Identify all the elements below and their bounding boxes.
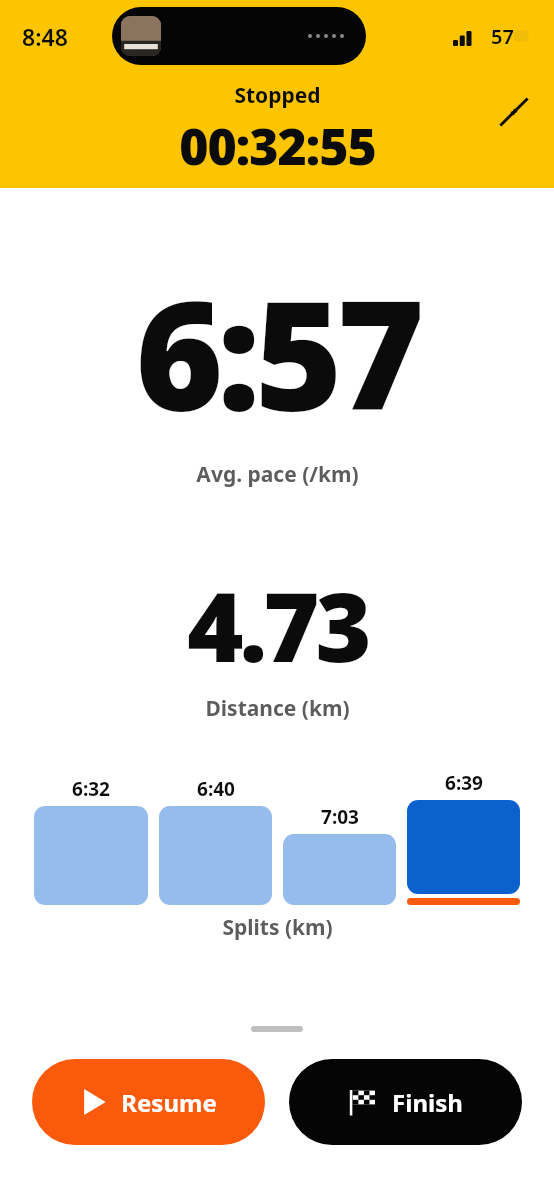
button[interactable]: Finish	[289, 1059, 522, 1145]
staticText: 4.73	[187, 559, 368, 690]
staticText: 8:48	[22, 21, 68, 52]
staticText: 7:03	[321, 804, 359, 830]
button[interactable]: 6:40	[159, 776, 272, 905]
button[interactable]: Collapse	[488, 86, 540, 138]
staticText: Splits (km)	[222, 913, 333, 942]
staticText: 6:40	[197, 776, 235, 802]
staticText: Finish	[392, 1086, 463, 1119]
staticText: 6:39	[445, 770, 483, 796]
staticText: Avg. pace (/km)	[196, 460, 359, 489]
staticText: Stopped	[234, 81, 321, 110]
staticText: Resume	[121, 1086, 217, 1119]
button[interactable]: 6:32	[34, 776, 148, 905]
button[interactable]: 7:03	[283, 804, 396, 905]
staticText: 57	[491, 23, 514, 50]
staticText: Distance (km)	[205, 694, 350, 723]
staticText: 6:57	[135, 250, 419, 454]
button[interactable]: Resume	[32, 1059, 265, 1145]
staticText: 6:32	[72, 776, 110, 802]
button[interactable]: 6:39	[407, 770, 520, 905]
staticText: 00:32:55	[179, 112, 376, 180]
